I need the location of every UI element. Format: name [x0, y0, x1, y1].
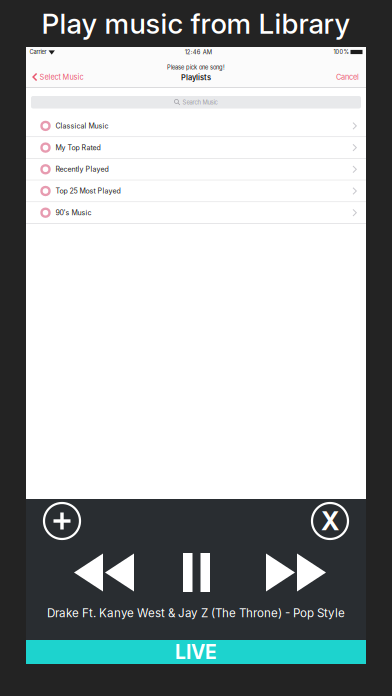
staticText: X — [321, 506, 339, 536]
staticText: Please pick one song! — [167, 64, 225, 71]
button[interactable]: Fast forward — [266, 553, 326, 591]
button[interactable]: 90's Music — [26, 202, 366, 224]
button[interactable]: Recently Played — [26, 159, 366, 181]
button[interactable]: Select Music — [26, 70, 88, 84]
button[interactable]: Close — [311, 502, 349, 540]
button[interactable]: Rewind — [74, 553, 134, 591]
staticText: Classical Music — [55, 122, 108, 130]
button[interactable]: My Top Rated — [26, 137, 366, 159]
button[interactable]: Cancel — [329, 70, 366, 84]
staticText: Carrier — [29, 49, 46, 55]
staticText: LIVE — [175, 640, 217, 664]
staticText: Select Music — [40, 73, 84, 81]
button[interactable]: LIVE — [26, 640, 366, 664]
staticText: 100% — [333, 49, 348, 55]
staticText: Recently Played — [55, 165, 108, 173]
staticText: Play music from Library — [41, 7, 350, 40]
button[interactable]: Pause — [183, 553, 210, 592]
staticText: 90's Music — [55, 208, 91, 217]
button[interactable]: Top 25 Most Played — [26, 181, 366, 202]
button[interactable]: Search Music — [26, 88, 366, 115]
staticText: 12:46 AM — [185, 48, 212, 56]
staticText: Top 25 Most Played — [55, 187, 120, 195]
staticText: My Top Rated — [55, 143, 100, 152]
staticText: Cancel — [336, 73, 359, 81]
staticText: Drake Ft. Kanye West & Jay Z (The Throne… — [47, 606, 345, 620]
button[interactable]: Add — [43, 502, 81, 540]
button[interactable]: Classical Music — [26, 115, 366, 137]
staticText: Search Music — [182, 99, 217, 106]
staticText: Playlists — [181, 73, 211, 82]
